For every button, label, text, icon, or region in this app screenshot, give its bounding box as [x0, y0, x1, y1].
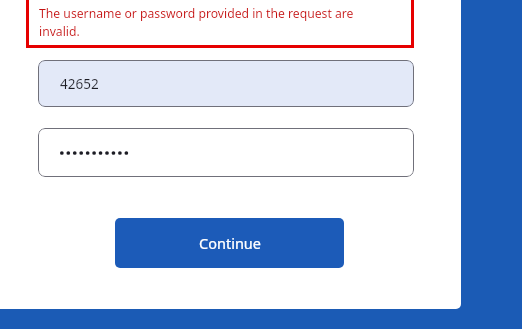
button[interactable]: Username — [38, 60, 414, 107]
staticText: Continue — [199, 233, 261, 253]
staticText: The username or password provided in the… — [39, 5, 354, 22]
button[interactable]: Continue — [115, 218, 344, 268]
staticText: 42652 — [60, 75, 99, 93]
staticText: invalid. — [39, 23, 80, 40]
button[interactable]: Password — [38, 128, 414, 177]
